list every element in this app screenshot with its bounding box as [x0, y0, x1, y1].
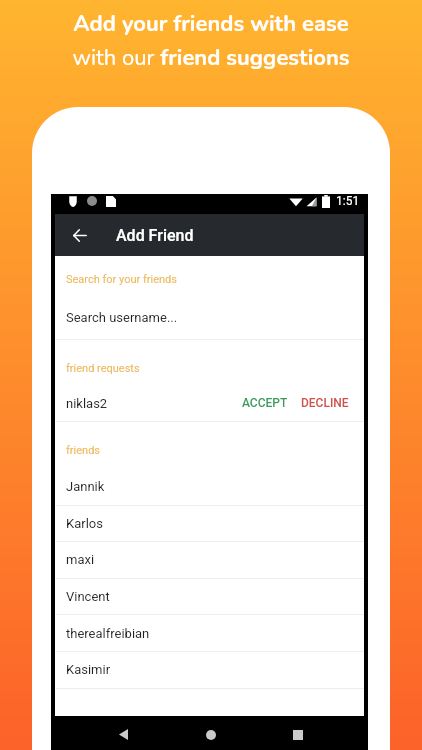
staticText: ACCEPT	[242, 396, 288, 410]
staticText: Kasimir	[66, 662, 111, 677]
staticText: Add your friends with ease	[73, 9, 349, 39]
staticText: with our friend suggestions	[72, 43, 350, 73]
button[interactable]: Home	[194, 718, 227, 750]
button[interactable]	[55, 616, 364, 652]
staticText: therealfreibian	[66, 626, 150, 641]
button[interactable]	[55, 506, 364, 542]
button[interactable]	[55, 652, 364, 688]
staticText: friend requests	[66, 362, 140, 375]
button[interactable]: Back	[55, 214, 100, 256]
staticText: Search for your friends	[66, 273, 178, 286]
staticText: Karlos	[66, 516, 103, 531]
staticText: Vincent	[66, 589, 110, 604]
button[interactable]	[55, 542, 364, 578]
button[interactable]: Recent apps	[281, 718, 314, 750]
button[interactable]: DECLINE	[301, 391, 349, 415]
staticText: Search username...	[66, 310, 178, 325]
button[interactable]	[55, 469, 364, 505]
staticText: Jannik	[66, 479, 105, 494]
staticText: friends	[66, 444, 101, 457]
staticText: DECLINE	[301, 396, 349, 410]
button[interactable]	[55, 256, 364, 339]
staticText: niklas2	[66, 396, 108, 411]
staticText: maxi	[66, 552, 95, 567]
button[interactable]	[55, 386, 364, 420]
button[interactable]: ACCEPT	[242, 391, 288, 415]
staticText: 1:51	[336, 194, 360, 208]
button[interactable]	[55, 579, 364, 615]
staticText: Add Friend	[116, 226, 194, 245]
button[interactable]: Back	[107, 718, 140, 750]
